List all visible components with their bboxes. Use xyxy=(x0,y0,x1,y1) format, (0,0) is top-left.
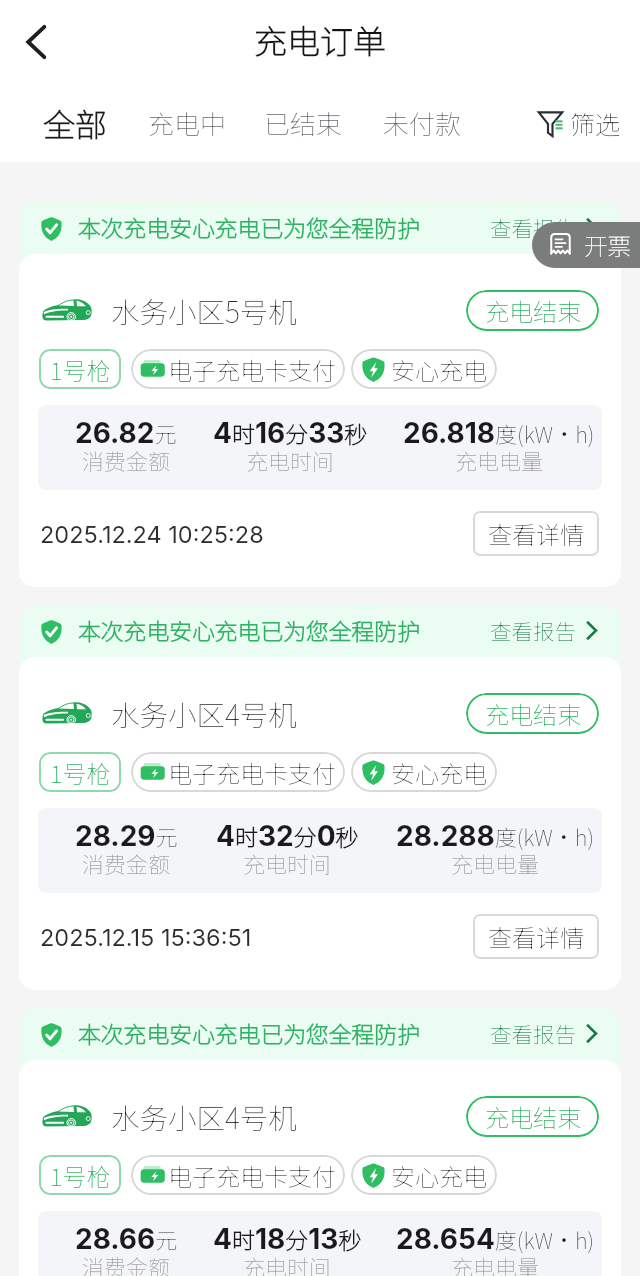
staticText: 1号枪 xyxy=(50,755,111,790)
button[interactable]: 电子充电卡支付 xyxy=(131,752,345,792)
staticText: 水务小区4号机 xyxy=(111,1096,297,1137)
staticText: 28.29元 xyxy=(75,819,178,853)
staticText: 筛选 xyxy=(570,105,621,141)
staticText: 28.288度(kW·h) xyxy=(396,819,595,853)
button[interactable]: 本次充电安心充电已为您全程防护 xyxy=(19,605,621,673)
staticText: 28.654度(kW·h) xyxy=(396,1222,595,1256)
staticText: 26.82元 xyxy=(75,416,177,450)
staticText: 消费金额 xyxy=(82,1250,171,1276)
button[interactable]: 查看详情 xyxy=(473,511,599,556)
staticText: 充电时间 xyxy=(243,847,332,879)
button[interactable]: 1号枪 xyxy=(39,349,121,389)
staticText: 全部 xyxy=(43,100,108,146)
button[interactable]: 充电结束 xyxy=(466,1096,599,1137)
staticText: 消费金额 xyxy=(82,847,171,879)
staticText: 充电电量 xyxy=(455,444,544,476)
button[interactable]: 查看报告 xyxy=(490,615,597,646)
button[interactable]: 查看报告 xyxy=(490,1018,597,1049)
button[interactable]: 充电结束 xyxy=(466,290,599,331)
button[interactable]: 充电结束 xyxy=(466,693,599,734)
button[interactable]: 已结束 xyxy=(264,104,343,142)
button[interactable]: 1号枪 xyxy=(39,752,121,792)
staticText: 充电中 xyxy=(148,104,227,142)
staticText: 充电时间 xyxy=(246,444,335,476)
staticText: 查看报告 xyxy=(490,1018,577,1049)
button[interactable]: 水务小区4号机 xyxy=(19,1060,621,1276)
staticText: 2025.12.15 15:36:51 xyxy=(40,923,252,951)
staticText: 26.818度(kW·h) xyxy=(403,416,595,450)
button[interactable]: 电子充电卡支付 xyxy=(131,1155,345,1195)
staticText: 已结束 xyxy=(264,104,343,142)
button[interactable]: 电子充电卡支付 xyxy=(131,349,345,389)
staticText: 水务小区4号机 xyxy=(111,693,297,734)
button[interactable]: 充电中 xyxy=(148,104,227,142)
staticText: 充电电量 xyxy=(451,1250,540,1276)
staticText: 4时18分13秒 xyxy=(213,1222,362,1256)
staticText: 未付款 xyxy=(383,104,462,142)
staticText: 查看报告 xyxy=(490,212,577,243)
staticText: 水务小区5号机 xyxy=(111,290,297,331)
staticText: 1号枪 xyxy=(50,352,111,387)
staticText: 电子充电卡支付 xyxy=(168,352,336,387)
staticText: 充电结束 xyxy=(485,293,581,328)
button[interactable]: 未付款 xyxy=(383,104,462,142)
staticText: 电子充电卡支付 xyxy=(168,1158,336,1193)
button[interactable]: 查看报告 xyxy=(490,212,597,243)
button[interactable]: Back xyxy=(9,15,63,69)
button[interactable]: 1号枪 xyxy=(39,1155,121,1195)
button[interactable]: 本次充电安心充电已为您全程防护 xyxy=(19,1008,621,1076)
staticText: 充电电量 xyxy=(451,847,540,879)
staticText: 1号枪 xyxy=(50,1158,111,1193)
staticText: 查看详情 xyxy=(488,516,584,551)
staticText: 查看报告 xyxy=(490,615,577,646)
button[interactable]: 本次充电安心充电已为您全程防护 xyxy=(19,202,621,270)
staticText: 4时32分0秒 xyxy=(216,819,359,853)
button[interactable]: 查看详情 xyxy=(473,914,599,959)
staticText: 4时16分33秒 xyxy=(213,416,368,450)
staticText: 2025.12.24 10:25:28 xyxy=(40,520,264,548)
staticText: 充电时间 xyxy=(243,1250,332,1276)
staticText: 充电结束 xyxy=(485,1099,581,1134)
staticText: 充电结束 xyxy=(485,696,581,731)
button[interactable]: 安心充电 xyxy=(351,1155,497,1195)
staticText: 安心充电 xyxy=(391,755,487,790)
staticText: 查看详情 xyxy=(488,919,584,954)
staticText: 电子充电卡支付 xyxy=(168,755,336,790)
staticText: 本次充电安心充电已为您全程防护 xyxy=(78,614,420,647)
button[interactable]: 安心充电 xyxy=(351,349,497,389)
staticText: 28.66元 xyxy=(75,1222,178,1256)
button[interactable]: 安心充电 xyxy=(351,752,497,792)
staticText: 充电订单 xyxy=(254,16,386,64)
staticText: 消费金额 xyxy=(82,444,171,476)
staticText: 本次充电安心充电已为您全程防护 xyxy=(78,1017,420,1050)
button[interactable]: 开票 Invoice xyxy=(532,222,640,268)
button[interactable]: 水务小区4号机 xyxy=(19,657,621,990)
staticText: 开票 xyxy=(584,228,631,262)
staticText: 安心充电 xyxy=(391,352,487,387)
button[interactable]: 筛选 xyxy=(538,105,621,141)
staticText: 安心充电 xyxy=(391,1158,487,1193)
button[interactable]: 全部 xyxy=(43,100,108,146)
staticText: 本次充电安心充电已为您全程防护 xyxy=(78,211,420,244)
button[interactable]: 水务小区5号机 xyxy=(19,254,621,587)
